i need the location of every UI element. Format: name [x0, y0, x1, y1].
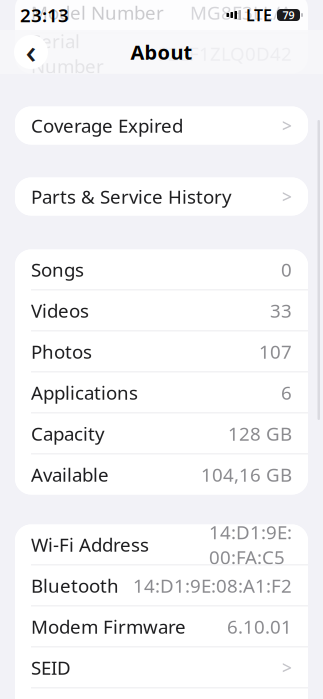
staticText: Songs — [31, 257, 84, 282]
staticText: Serial Number — [31, 29, 104, 78]
staticText: SEID — [31, 655, 71, 680]
button[interactable]: Songs — [15, 249, 308, 289]
staticText: 6 — [281, 380, 292, 405]
staticText: Parts & Service History — [31, 184, 232, 209]
staticText: F2LF1ZLQ0D42 — [158, 41, 292, 66]
button[interactable]: Videos — [15, 290, 308, 330]
staticText: Bluetooth — [31, 573, 119, 598]
staticText: MG8E3LL/A — [190, 0, 292, 25]
staticText: Photos — [31, 339, 92, 364]
staticText: 79 — [282, 8, 294, 22]
button[interactable]: SEID — [15, 647, 308, 687]
staticText: ‹ — [25, 28, 36, 73]
button[interactable]: Capacity — [15, 413, 308, 453]
staticText: LTE — [246, 4, 272, 26]
staticText: 23:13 — [20, 3, 69, 27]
staticText: 107 — [259, 339, 292, 364]
staticText: Coverage Expired — [31, 113, 183, 138]
button[interactable]: Applications — [15, 372, 308, 412]
staticText: About — [130, 39, 192, 65]
button[interactable]: Back — [9, 30, 53, 74]
staticText: 14:D1:9E:00:FA:C5 — [209, 520, 292, 569]
button[interactable]: Modem Firmware — [15, 606, 308, 646]
staticText: Model Number — [31, 0, 164, 25]
staticText: 6.10.01 — [227, 614, 292, 639]
button[interactable]: Parts & Service History — [15, 177, 308, 215]
staticText: 128 GB — [228, 421, 292, 446]
staticText: 104,16 GB — [201, 462, 292, 487]
staticText: Applications — [31, 380, 138, 405]
staticText: Available — [31, 462, 109, 487]
button[interactable]: Photos — [15, 331, 308, 371]
button[interactable]: Coverage Expired — [15, 106, 308, 144]
button[interactable]: Available — [15, 454, 308, 494]
staticText: Videos — [31, 298, 89, 323]
staticText: > — [282, 656, 292, 679]
button[interactable]: Bluetooth — [15, 565, 308, 605]
staticText: > — [282, 114, 292, 137]
staticText: 14:D1:9E:08:A1:F2 — [133, 573, 292, 598]
staticText: Modem Firmware — [31, 614, 186, 639]
staticText: Capacity — [31, 421, 105, 446]
button[interactable]: Wi-Fi Address — [15, 524, 308, 564]
staticText: Wi-Fi Address — [31, 532, 149, 557]
staticText: 33 — [270, 298, 292, 323]
staticText: 0 — [281, 257, 292, 282]
staticText: > — [282, 185, 292, 208]
